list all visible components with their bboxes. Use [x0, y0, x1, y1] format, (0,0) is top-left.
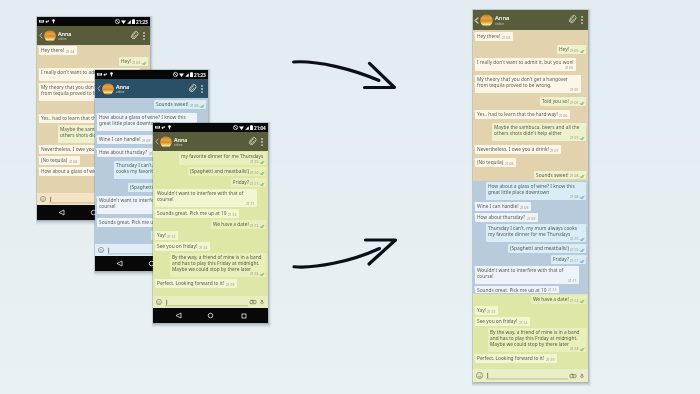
button[interactable]: Camera — [190, 247, 196, 253]
button[interactable]: My theory that you don't get a hangover … — [39, 83, 143, 101]
button[interactable]: By the way, a friend of mine is in a ban… — [488, 328, 586, 352]
button[interactable]: More options — [198, 79, 206, 98]
button[interactable]: Emoji — [40, 196, 46, 202]
button[interactable]: More options — [258, 132, 266, 151]
button[interactable]: Emoji — [476, 372, 483, 379]
button[interactable]: Attach — [565, 10, 578, 30]
staticText: 21:10 — [570, 237, 579, 241]
button[interactable]: (Spaghetti and meatballs!) — [188, 167, 266, 176]
button[interactable]: Wouldn't want to interfere with that of … — [97, 196, 197, 214]
button[interactable]: Hey there! — [39, 46, 77, 55]
button[interactable]: Sounds great. Pick me up at 10 — [155, 209, 239, 218]
button[interactable]: How about thursday? — [475, 213, 538, 222]
button[interactable]: Back — [112, 256, 127, 271]
staticText: 21:07 — [132, 138, 141, 142]
button[interactable]: Voice message — [141, 196, 147, 202]
button[interactable]: Sounds sweet! — [154, 100, 206, 109]
button[interactable]: Hey there! — [475, 32, 513, 41]
button[interactable]: Attach — [127, 26, 140, 45]
button[interactable]: Recent apps — [176, 256, 191, 271]
button[interactable]: Camera — [570, 373, 576, 379]
button[interactable]: (Spaghetti and meatballs!) — [508, 244, 586, 253]
button[interactable]: We have a date! — [531, 295, 586, 304]
button[interactable]: Attach — [185, 79, 198, 98]
button[interactable]: Yay! — [155, 231, 178, 240]
button[interactable]: Maybe the sambuca, beers and all the oth… — [492, 123, 586, 141]
button[interactable]: Wine I can handle! — [475, 202, 531, 211]
button[interactable]: See you on friday! — [155, 242, 210, 251]
button[interactable] — [165, 298, 248, 307]
button[interactable]: I really don't want to admit it, but you… — [39, 68, 140, 81]
staticText: Perfect. Looking forward to it! — [477, 355, 545, 362]
button[interactable]: Nevertheless, I owe you a drink! — [475, 145, 561, 154]
button[interactable]: See you on friday! — [475, 317, 530, 326]
button[interactable]: Back — [37, 26, 44, 45]
button[interactable]: Maybe the sambuca, beers and all the oth… — [58, 125, 148, 143]
button[interactable]: Perfect. Looking forward to it! — [155, 279, 237, 288]
button[interactable]: Thursday I can't, my mum always cooks my… — [114, 161, 206, 179]
button[interactable]: Voice message — [259, 299, 265, 305]
button[interactable]: Hey! — [557, 45, 586, 54]
button[interactable]: Home — [86, 205, 101, 220]
button[interactable]: We have a date! — [151, 231, 206, 240]
button[interactable]: Home — [203, 308, 218, 323]
button[interactable]: my favorite dinner for me Thursdays — [179, 152, 266, 165]
button[interactable]: Hey! — [119, 57, 148, 66]
button[interactable]: (Spaghetti and meatballs!) — [128, 183, 206, 192]
button[interactable]: By the way, a friend of mine is in a ban… — [170, 253, 266, 277]
button[interactable]: Wouldn't want to interfere with that of … — [155, 189, 257, 207]
button[interactable]: Recent apps — [118, 205, 133, 220]
button[interactable]: Contact photo — [44, 30, 56, 42]
button[interactable]: Nevertheless, I owe you a drink! — [39, 145, 125, 154]
staticText: Yes.. had to learn that the hard way! — [477, 111, 558, 118]
button[interactable]: Sounds great. Pick me up at 10 — [97, 218, 181, 227]
button[interactable]: Voice message — [199, 247, 205, 253]
button[interactable]: Thursday I can't, my mum always cooks my… — [486, 224, 586, 242]
button[interactable]: Yes.. had to learn that the hard way! — [475, 110, 570, 119]
button[interactable]: Yay! — [475, 306, 498, 315]
button[interactable]: Friday? — [551, 255, 586, 264]
button[interactable]: Back — [95, 79, 102, 98]
button[interactable] — [486, 371, 568, 380]
button[interactable] — [107, 246, 188, 255]
staticText: Yay! — [477, 307, 486, 314]
button[interactable]: Contact photo — [160, 136, 172, 148]
button[interactable]: More options — [140, 26, 148, 45]
button[interactable]: My theory that you don't get a hangover … — [475, 75, 581, 93]
button[interactable]: We have a date! — [211, 220, 266, 229]
button[interactable]: Sounds great. Pick me up at 10 — [475, 286, 559, 293]
button[interactable]: How about a glass of wine? I know this g… — [97, 113, 197, 131]
button[interactable]: Back — [171, 308, 186, 323]
button[interactable]: More options — [578, 10, 586, 30]
button[interactable]: How about thursday? — [97, 148, 160, 157]
button[interactable]: (No tequila) — [475, 158, 516, 167]
button[interactable]: Contact photo — [102, 83, 114, 95]
staticText: 21:06 — [570, 101, 579, 105]
button[interactable]: Sounds sweet! — [534, 171, 586, 179]
button[interactable]: I really don't want to admit it, but you… — [475, 58, 576, 71]
button[interactable]: Home — [144, 256, 159, 271]
button[interactable]: Attach — [245, 132, 258, 151]
button[interactable]: Friday? — [231, 178, 266, 187]
button[interactable]: Recent apps — [236, 308, 251, 323]
button[interactable]: Back — [54, 205, 69, 220]
button[interactable]: Emoji — [98, 247, 104, 253]
button[interactable]: How about a glass of wine? — [39, 167, 115, 176]
button[interactable]: Camera — [250, 299, 256, 305]
button[interactable]: Wouldn't want to interfere with that of … — [475, 266, 579, 284]
button[interactable]: Told you so! — [540, 97, 586, 106]
button[interactable]: Camera — [132, 196, 138, 202]
button[interactable]: Back — [473, 10, 480, 30]
button[interactable]: Voice message — [579, 373, 585, 379]
button[interactable]: Back — [153, 132, 160, 151]
button[interactable]: How about a glass of wine? I know this g… — [486, 182, 586, 200]
staticText: online — [495, 22, 504, 26]
button[interactable]: Emoji — [156, 299, 162, 305]
button[interactable]: Yes.. had to learn that the hard way! — [39, 114, 134, 123]
button[interactable]: Wine I can handle! — [97, 135, 153, 144]
button[interactable]: Perfect. Looking forward to it! — [475, 354, 557, 363]
button[interactable]: (No tequila) — [39, 156, 80, 165]
button[interactable]: Contact photo — [480, 14, 493, 27]
button[interactable] — [49, 195, 130, 204]
